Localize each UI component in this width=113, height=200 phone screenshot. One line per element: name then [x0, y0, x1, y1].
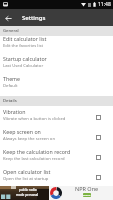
- staticText: public radio: [19, 188, 37, 192]
- staticText: Settings: [22, 14, 46, 22]
- staticText: made personal: [16, 193, 39, 197]
- button[interactable]: Keep screen on: [96, 129, 113, 149]
- button[interactable]: Theme: [0, 76, 113, 96]
- button[interactable]: Keep screen on: [0, 129, 113, 149]
- staticText: General: [3, 28, 19, 34]
- staticText: Edit the favorites list: [3, 43, 44, 49]
- button[interactable]: Edit calculator list: [0, 36, 113, 56]
- staticText: Startup calculator: [3, 55, 47, 62]
- staticText: Keep the calculation record: [3, 148, 71, 155]
- staticText: Edit calculator list: [3, 35, 47, 42]
- staticText: Open the list at startup: [3, 176, 49, 182]
- staticText: Vibrate when a button is clicked: [3, 116, 66, 122]
- button[interactable]: public radio: [0, 186, 113, 200]
- button[interactable]: Startup calculator: [0, 56, 113, 76]
- staticText: Open calculator list: [3, 168, 51, 175]
- button[interactable]: Keep the calculation record: [96, 149, 113, 169]
- staticText: Theme: [3, 75, 20, 82]
- button[interactable]: INSTALL: [83, 193, 91, 197]
- staticText: NPR One: [75, 185, 99, 192]
- staticText: Keep the last calculation record: [3, 156, 65, 162]
- button[interactable]: Open calculator list: [96, 169, 113, 189]
- button[interactable]: Keep the calculation record: [0, 149, 113, 169]
- staticText: Default: [3, 83, 18, 89]
- button[interactable]: Open calculator list: [0, 169, 113, 189]
- staticText: Always keep the screen on: [3, 136, 55, 142]
- staticText: 11:48: [98, 1, 111, 8]
- button[interactable]: Vibration: [96, 109, 113, 129]
- staticText: Keep screen on: [3, 128, 41, 135]
- button[interactable]: Navigate up: [0, 10, 16, 26]
- staticText: Last Used Calculator: [3, 63, 44, 69]
- staticText: Details: [3, 98, 17, 104]
- staticText: Vibration: [3, 108, 26, 115]
- staticText: INSTALL: [83, 194, 91, 197]
- button[interactable]: Vibration: [0, 109, 113, 129]
